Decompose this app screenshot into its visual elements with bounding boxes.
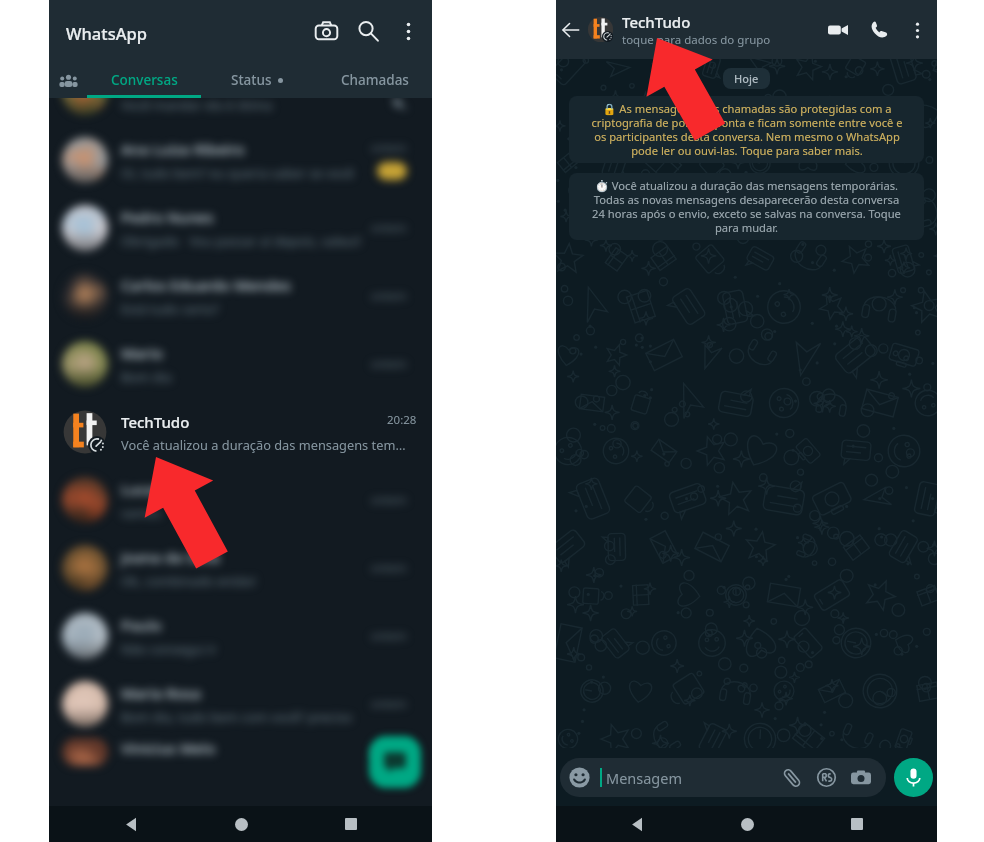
staticText: ontem bbox=[371, 220, 407, 236]
button[interactable]: 🔒 As mensagens e as chamadas são protegi… bbox=[569, 96, 924, 163]
staticText: ontem bbox=[371, 560, 407, 576]
staticText: ontem bbox=[371, 744, 407, 760]
staticText: Conversas bbox=[111, 71, 178, 89]
staticText: Bom dia bbox=[121, 368, 172, 386]
staticText: ontem bbox=[371, 288, 407, 304]
button[interactable]: Pedro Nunes bbox=[49, 194, 432, 262]
staticText: Você mandar ela é ótima bbox=[121, 98, 273, 114]
staticText: Bom dia, tudo bem com você? preciso fala… bbox=[121, 708, 365, 726]
button[interactable]: Carlos Eduardo Mendes bbox=[49, 262, 432, 330]
button[interactable]: Lucas bbox=[49, 466, 432, 534]
button[interactable]: Video call bbox=[820, 12, 856, 48]
staticText: Carlos Eduardo Mendes bbox=[121, 275, 291, 295]
button[interactable]: More options bbox=[389, 12, 427, 50]
button[interactable]: Vinicius Melo bbox=[49, 738, 432, 766]
staticText: Status bbox=[231, 71, 272, 89]
button[interactable]: New chat bbox=[369, 736, 421, 788]
staticText: Está tudo certo? bbox=[121, 300, 219, 318]
button[interactable]: Mensagem bbox=[560, 758, 886, 797]
staticText: Não consegui ir bbox=[121, 640, 217, 658]
staticText: ontem bbox=[371, 140, 407, 156]
button[interactable]: Hoje bbox=[723, 68, 770, 89]
button[interactable]: Back bbox=[616, 806, 658, 842]
staticText: Ok, combinado então! bbox=[121, 572, 256, 590]
staticText: ontem bbox=[371, 628, 407, 644]
button[interactable]: Voice call bbox=[862, 13, 896, 47]
staticText: Você atualizou a duração das mensagens t… bbox=[121, 436, 406, 453]
button[interactable]: Maria Rosa bbox=[49, 670, 432, 738]
button[interactable]: Recent apps bbox=[836, 806, 878, 842]
staticText: Oi, tudo bem? eu queria saber se você va… bbox=[121, 164, 365, 182]
button[interactable]: Chamadas bbox=[318, 62, 432, 98]
button[interactable]: Back bbox=[110, 806, 152, 842]
staticText: Hoje bbox=[734, 71, 759, 86]
button[interactable]: Paulo bbox=[49, 602, 432, 670]
button[interactable]: Voice message bbox=[894, 758, 933, 797]
staticText: Obrigado Vou passar aí depois, valeu!! bbox=[121, 232, 362, 250]
button[interactable]: ⏱ Você atualizou a duração das mensagens… bbox=[569, 173, 924, 240]
button[interactable]: Communities bbox=[49, 62, 87, 98]
staticText: Pedro Nunes bbox=[121, 207, 214, 227]
staticText: toque para dados do grupo bbox=[622, 32, 771, 48]
staticText: Ana Luiza Ribeiro bbox=[121, 139, 245, 159]
staticText: Maria Rosa bbox=[121, 683, 201, 703]
button[interactable]: More options bbox=[900, 13, 934, 47]
staticText: WhatsApp bbox=[66, 22, 147, 44]
staticText: ontem bbox=[371, 696, 407, 712]
staticText: vamos bbox=[121, 504, 162, 522]
button[interactable]: Home bbox=[726, 806, 768, 842]
staticText: TechTudo bbox=[121, 412, 190, 432]
staticText: Paulo bbox=[121, 615, 162, 635]
staticText: 🔒 As mensagens e as chamadas são protegi… bbox=[591, 101, 903, 158]
staticText: ontem bbox=[371, 356, 407, 372]
button[interactable]: Camera bbox=[305, 10, 347, 52]
staticText: Mario bbox=[121, 343, 163, 363]
button[interactable]: Back bbox=[556, 15, 586, 45]
button[interactable]: Ana Luiza Ribeiro bbox=[49, 126, 432, 194]
staticText: Vinicius Melo bbox=[121, 738, 216, 758]
staticText: ⏱ Você atualizou a duração das mensagens… bbox=[592, 178, 901, 235]
staticText: Joana da Silva bbox=[121, 547, 220, 567]
button[interactable]: Mario bbox=[49, 330, 432, 398]
button[interactable]: Joana da Silva bbox=[49, 534, 432, 602]
staticText: 20:28 bbox=[387, 412, 417, 428]
staticText: Lucas bbox=[121, 479, 162, 499]
button[interactable]: Search bbox=[347, 10, 389, 52]
staticText: Chamadas bbox=[341, 71, 409, 89]
button[interactable]: TechTudo bbox=[49, 398, 432, 466]
button[interactable]: Conversas bbox=[87, 62, 201, 98]
button[interactable]: Home bbox=[220, 806, 262, 842]
staticText: ontem bbox=[371, 492, 407, 508]
button[interactable]: Gerson bbox=[49, 98, 432, 126]
staticText: Mensagem bbox=[606, 768, 683, 788]
staticText: TechTudo bbox=[622, 12, 691, 32]
button[interactable]: Recent apps bbox=[330, 806, 372, 842]
button[interactable]: Status bbox=[200, 62, 314, 98]
